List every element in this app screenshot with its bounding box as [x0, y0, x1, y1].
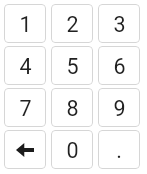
staticText: 3 — [113, 12, 126, 37]
button[interactable]: 9 — [98, 88, 140, 127]
button[interactable]: . — [98, 130, 140, 169]
button[interactable]: 6 — [98, 46, 140, 85]
staticText: 7 — [19, 96, 32, 121]
button[interactable]: 8 — [51, 88, 93, 127]
button[interactable]: 0 — [51, 130, 93, 169]
staticText: 2 — [66, 12, 79, 37]
button[interactable]: 1 — [4, 4, 46, 43]
staticText: 1 — [19, 12, 32, 37]
button[interactable]: 3 — [98, 4, 140, 43]
staticText: 9 — [113, 96, 126, 121]
staticText: . — [116, 138, 122, 163]
staticText: 5 — [66, 54, 79, 79]
button[interactable]: 7 — [4, 88, 46, 127]
button[interactable]: Backspace — [4, 130, 46, 169]
staticText: 0 — [66, 138, 79, 163]
button[interactable]: 5 — [51, 46, 93, 85]
staticText: 8 — [66, 96, 79, 121]
staticText: 4 — [19, 54, 32, 79]
button[interactable]: 4 — [4, 46, 46, 85]
staticText: 6 — [113, 54, 126, 79]
button[interactable]: 2 — [51, 4, 93, 43]
